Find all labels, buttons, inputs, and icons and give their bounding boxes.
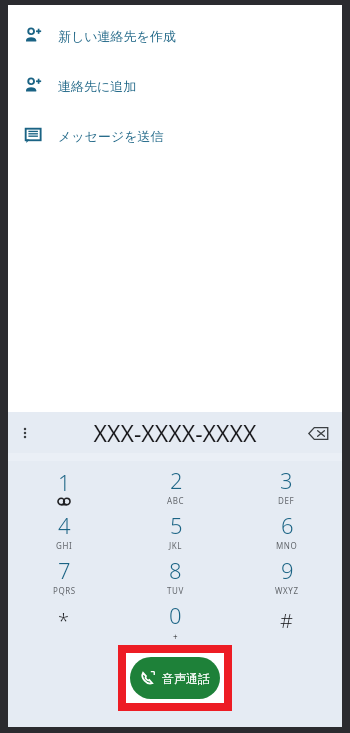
staticText: 3 <box>280 465 293 495</box>
staticText: 連絡先に追加 <box>58 78 137 94</box>
staticText: 音声通話 <box>162 671 210 686</box>
button[interactable]: More options <box>9 417 41 449</box>
staticText: 6 <box>281 510 294 540</box>
button[interactable]: * <box>8 598 120 643</box>
staticText: メッセージを送信 <box>58 128 164 144</box>
staticText: GHI <box>56 540 73 551</box>
staticText: 2 <box>170 465 183 495</box>
button[interactable]: 音声通話 <box>130 657 220 699</box>
button[interactable]: 7 <box>8 553 120 598</box>
staticText: * <box>58 607 70 634</box>
staticText: + <box>173 631 178 642</box>
button[interactable]: メッセージを送信 <box>8 117 342 154</box>
staticText: 4 <box>58 510 71 540</box>
staticText: WXYZ <box>275 585 299 596</box>
button[interactable]: 新しい連絡先を作成 <box>8 17 342 54</box>
staticText: XXX-XXXX-XXXX <box>93 417 257 448</box>
button[interactable]: 6 <box>231 508 342 553</box>
staticText: # <box>280 607 293 634</box>
staticText: MNO <box>276 540 298 551</box>
staticText: 新しい連絡先を作成 <box>58 28 176 44</box>
button[interactable]: 2 <box>120 463 231 508</box>
staticText: 9 <box>281 555 294 585</box>
button[interactable]: 連絡先に追加 <box>8 67 342 104</box>
staticText: 8 <box>169 555 182 585</box>
button[interactable]: 8 <box>120 553 231 598</box>
button[interactable]: 9 <box>231 553 342 598</box>
button[interactable]: 5 <box>120 508 231 553</box>
button[interactable]: # <box>231 598 342 643</box>
staticText: TUV <box>167 585 184 596</box>
staticText: PQRS <box>53 585 76 596</box>
button[interactable]: 4 <box>8 508 120 553</box>
staticText: DEF <box>278 495 295 506</box>
button[interactable]: 0 <box>120 598 231 643</box>
staticText: 1 <box>58 467 71 497</box>
staticText: JKL <box>169 540 183 551</box>
button[interactable]: Backspace <box>299 414 337 452</box>
button[interactable]: 3 <box>231 463 342 508</box>
button[interactable]: 1 <box>8 463 120 508</box>
staticText: ABC <box>167 495 185 506</box>
staticText: 7 <box>58 555 71 585</box>
staticText: 5 <box>170 510 183 540</box>
staticText: 0 <box>169 600 182 630</box>
